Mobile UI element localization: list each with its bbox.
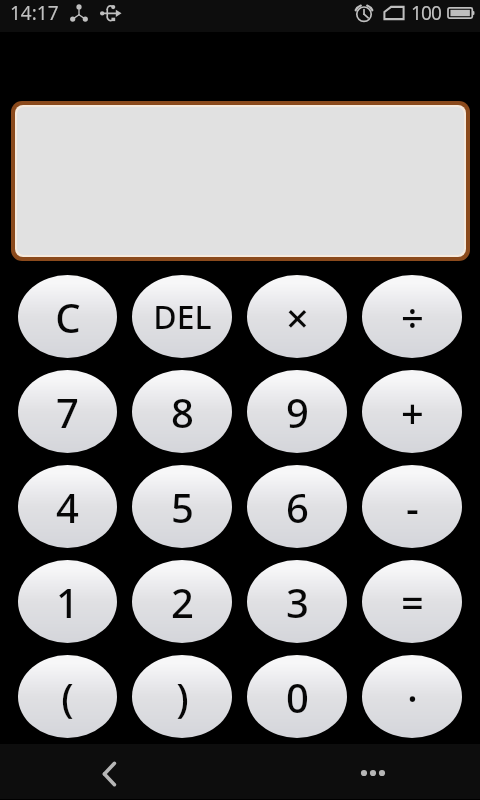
button[interactable]: ×: [247, 275, 347, 358]
button[interactable]: ): [132, 655, 232, 738]
staticText: -: [406, 480, 419, 534]
button[interactable]: Back: [87, 751, 133, 797]
staticText: 4: [56, 480, 79, 534]
staticText: 1: [56, 575, 79, 629]
staticText: +: [401, 385, 424, 439]
button[interactable]: C: [18, 275, 117, 358]
staticText: 8: [171, 385, 194, 439]
staticText: 2: [171, 575, 194, 629]
button[interactable]: 2: [132, 560, 232, 643]
staticText: C: [55, 290, 81, 344]
staticText: (: [61, 670, 74, 724]
button[interactable]: More options: [350, 750, 396, 796]
button[interactable]: 6: [247, 465, 347, 548]
staticText: 14:17: [10, 0, 59, 26]
button[interactable]: ÷: [362, 275, 462, 358]
staticText: 7: [56, 385, 79, 439]
button[interactable]: 5: [132, 465, 232, 548]
button[interactable]: 4: [18, 465, 117, 548]
staticText: 9: [286, 385, 309, 439]
button[interactable]: 0: [247, 655, 347, 738]
staticText: 3: [286, 575, 309, 629]
staticText: ×: [286, 290, 309, 344]
staticText: 6: [286, 480, 309, 534]
button[interactable]: ·: [362, 655, 462, 738]
staticText: 5: [171, 480, 194, 534]
button[interactable]: 7: [18, 370, 117, 453]
button[interactable]: +: [362, 370, 462, 453]
button[interactable]: 1: [18, 560, 117, 643]
button[interactable]: 3: [247, 560, 347, 643]
button[interactable]: DEL: [132, 275, 232, 358]
staticText: ÷: [401, 290, 424, 344]
button[interactable]: (: [18, 655, 117, 738]
button[interactable]: =: [362, 560, 462, 643]
staticText: ): [176, 670, 189, 724]
button[interactable]: -: [362, 465, 462, 548]
button[interactable]: 9: [247, 370, 347, 453]
staticText: DEL: [153, 295, 212, 339]
staticText: 100: [411, 0, 441, 26]
button[interactable]: 8: [132, 370, 232, 453]
staticText: 0: [286, 670, 309, 724]
staticText: =: [401, 575, 424, 629]
staticText: ·: [407, 670, 418, 724]
